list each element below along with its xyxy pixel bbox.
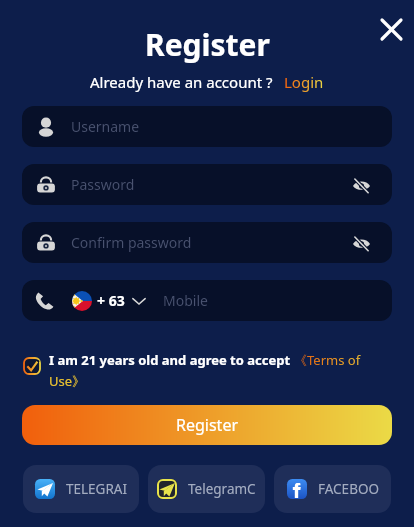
staticText: Mobile bbox=[163, 291, 208, 310]
staticText: 《Terms of bbox=[294, 351, 361, 369]
staticText: Login bbox=[284, 72, 324, 92]
staticText: FACEBOO bbox=[318, 480, 379, 498]
staticText: TelegramC bbox=[188, 480, 256, 498]
button[interactable]: FACEBOO bbox=[274, 465, 391, 513]
staticText: Confirm password bbox=[71, 233, 192, 252]
button[interactable]: Register bbox=[22, 405, 392, 445]
button[interactable]: Close bbox=[373, 11, 409, 47]
button[interactable]: I am 21 years old and agree to accept bbox=[23, 351, 391, 390]
staticText: I am 21 years old and agree to accept bbox=[49, 351, 294, 369]
staticText: Use》 bbox=[49, 372, 86, 390]
button[interactable]: Login bbox=[284, 72, 324, 92]
button[interactable]: TelegramC bbox=[148, 465, 265, 513]
staticText: Username bbox=[71, 117, 140, 136]
button[interactable]: Choose country code bbox=[131, 293, 147, 309]
staticText: Password bbox=[71, 175, 135, 194]
button[interactable]: TELEGRAI bbox=[23, 465, 139, 513]
button[interactable]: Username bbox=[22, 106, 392, 147]
staticText: + 63 bbox=[97, 291, 125, 310]
button[interactable]: Password bbox=[22, 164, 392, 205]
staticText: Already have an account ? bbox=[90, 72, 273, 92]
button[interactable]: Confirm password bbox=[22, 222, 392, 263]
staticText: TELEGRAI bbox=[66, 480, 128, 498]
button[interactable]: Show password bbox=[349, 231, 373, 255]
staticText: Register bbox=[145, 24, 270, 65]
button[interactable]: + 63 bbox=[22, 280, 392, 321]
staticText: Register bbox=[176, 414, 239, 436]
button[interactable]: Show password bbox=[349, 173, 373, 197]
